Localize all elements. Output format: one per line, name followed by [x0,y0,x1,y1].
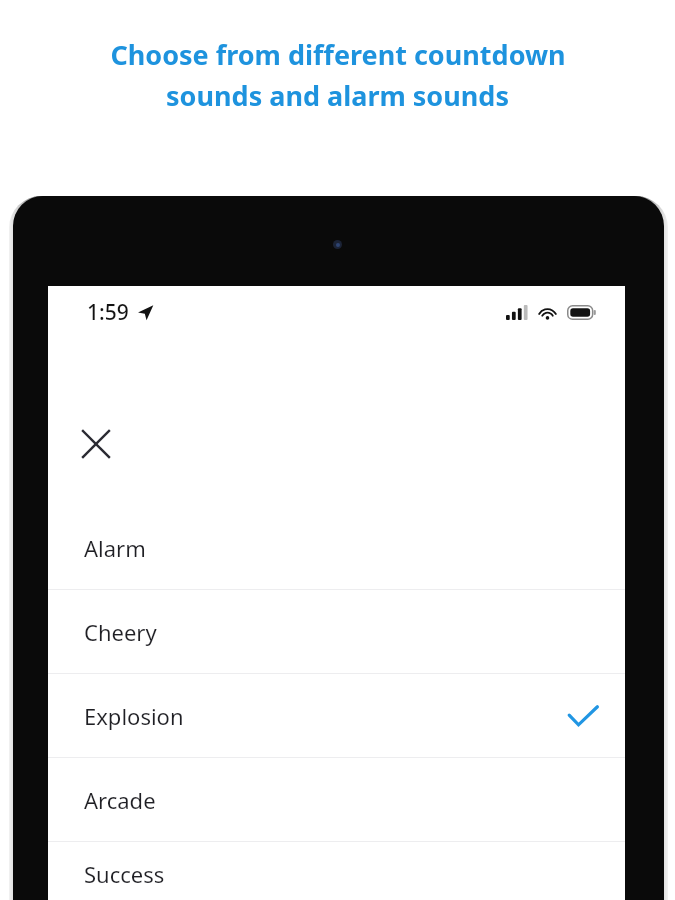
staticText: Arcade [84,785,156,815]
staticText: Alarm [84,533,146,563]
staticText: Success [84,859,165,889]
button[interactable]: Arcade [48,758,625,841]
button[interactable]: Success [48,842,625,900]
button[interactable]: Close [70,418,122,470]
staticText: sounds and alarm sounds [166,77,509,114]
staticText: 1:59 [87,298,129,327]
staticText: Cheery [84,617,157,647]
staticText: Explosion [84,701,184,731]
button[interactable]: Cheery [48,590,625,673]
staticText: Choose from different countdown [110,36,566,73]
button[interactable]: Alarm [48,506,625,589]
button[interactable]: Explosion [48,674,625,757]
